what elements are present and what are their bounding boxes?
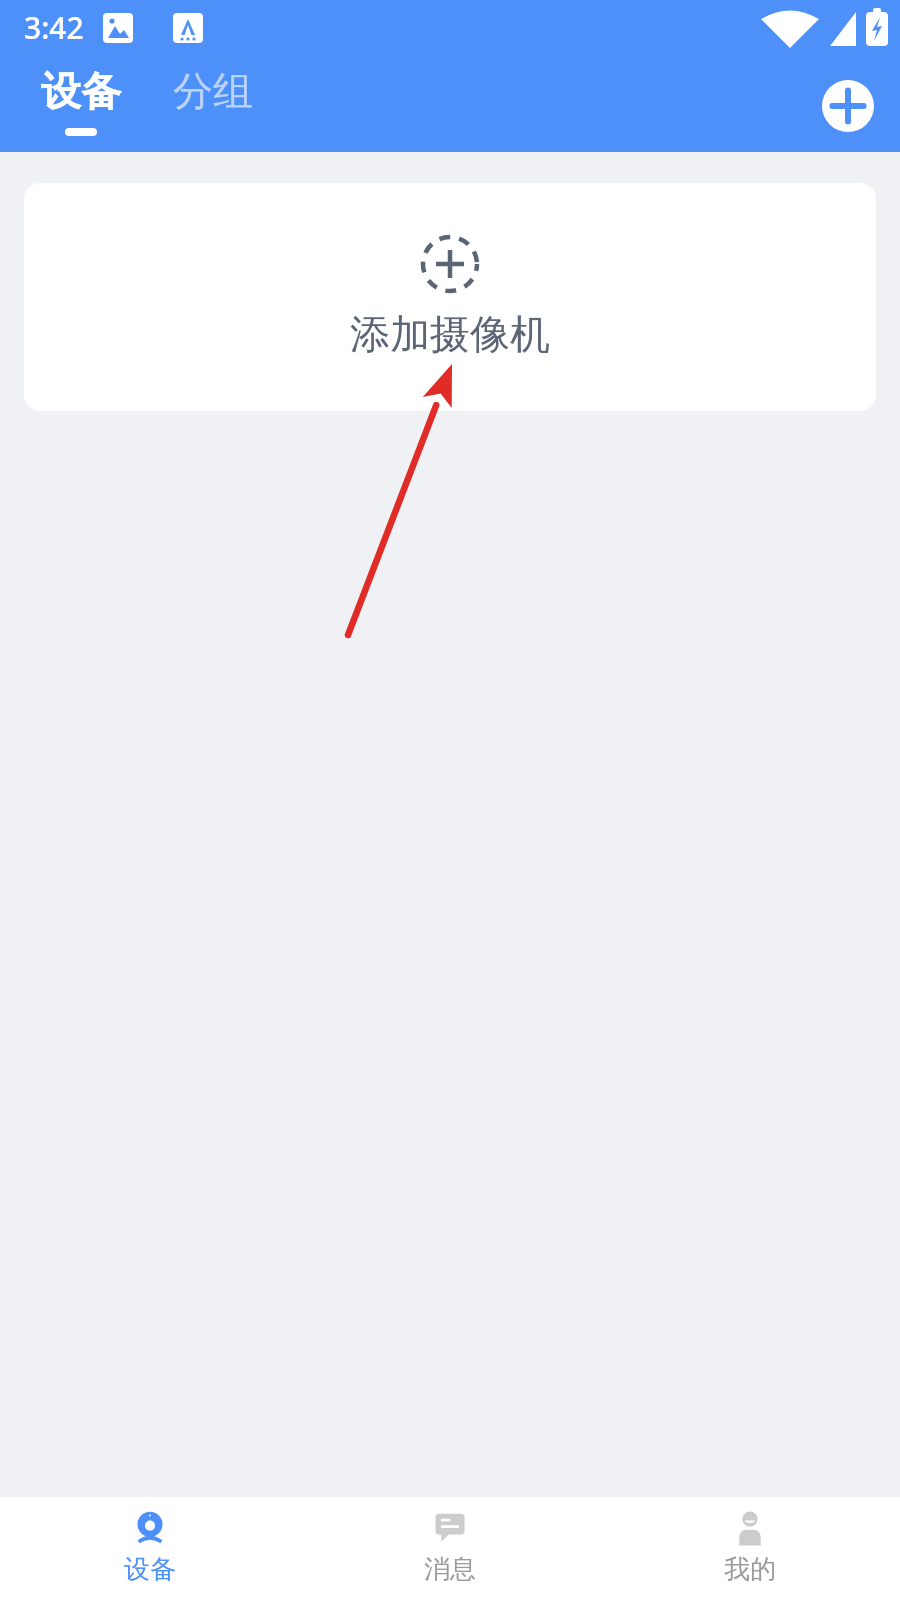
staticText: 添加摄像机 (350, 309, 550, 359)
button[interactable]: 消息 (300, 1497, 600, 1600)
staticText: 设备 (41, 66, 121, 116)
button[interactable]: 添加 (822, 80, 874, 132)
staticText: 我的 (724, 1553, 776, 1586)
button[interactable]: 我的 (600, 1497, 900, 1600)
button[interactable]: 设备 (36, 56, 126, 152)
button[interactable]: 添加摄像机 (24, 183, 876, 411)
button[interactable]: 分组 (168, 56, 258, 152)
staticText: 3:42 (24, 7, 84, 48)
staticText: 消息 (424, 1553, 476, 1586)
staticText: 分组 (173, 66, 253, 116)
staticText: 设备 (124, 1553, 176, 1586)
button[interactable]: 设备 (0, 1497, 300, 1600)
